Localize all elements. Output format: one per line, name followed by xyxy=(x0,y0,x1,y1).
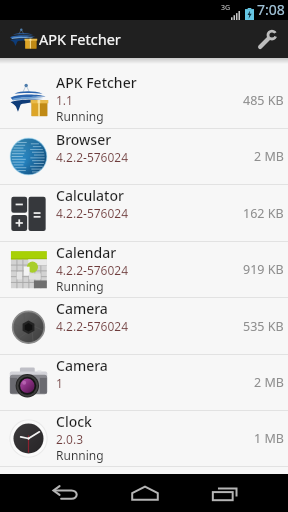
staticText: 4.2.2-576024 xyxy=(56,262,129,278)
staticText: APK Fetcher xyxy=(56,73,137,92)
button[interactable]: Browser xyxy=(0,129,288,185)
staticText: APK Fetcher xyxy=(39,29,121,49)
staticText: Clock xyxy=(56,412,92,431)
staticText: Camera xyxy=(56,299,108,318)
button[interactable]: Settings xyxy=(248,20,288,58)
staticText: 3G xyxy=(221,3,231,13)
button[interactable]: Back xyxy=(35,474,95,512)
staticText: 4.2.2-576024 xyxy=(56,205,129,221)
staticText: 1.1 xyxy=(56,92,73,108)
staticText: Running xyxy=(56,447,104,463)
staticText: 162 KB xyxy=(243,205,284,222)
staticText: 535 KB xyxy=(243,318,284,335)
staticText: Running xyxy=(56,108,104,124)
button[interactable]: Clock xyxy=(0,411,288,467)
staticText: 1 xyxy=(56,375,63,391)
button[interactable]: Recent apps xyxy=(195,474,255,512)
staticText: 4.2.2-576024 xyxy=(56,318,129,334)
staticText: Calendar xyxy=(56,243,117,262)
button[interactable]: Calendar xyxy=(0,242,288,298)
staticText: 2.0.3 xyxy=(56,431,84,447)
staticText: 7:08 xyxy=(257,0,285,19)
staticText: Running xyxy=(56,278,104,294)
staticText: 485 KB xyxy=(243,92,284,109)
staticText: 2 MB xyxy=(254,374,284,391)
staticText: 4.2.2-576024 xyxy=(56,149,129,165)
staticText: Camera xyxy=(56,356,108,375)
button[interactable]: Camera xyxy=(0,355,288,411)
button[interactable]: Camera xyxy=(0,298,288,355)
staticText: 919 KB xyxy=(243,261,284,278)
staticText: 1 MB xyxy=(254,430,284,447)
button[interactable]: Home xyxy=(115,474,175,512)
button[interactable]: Calculator xyxy=(0,185,288,242)
staticText: 2 MB xyxy=(254,148,284,165)
button[interactable]: APK Fetcher xyxy=(0,72,288,129)
staticText: Calculator xyxy=(56,186,124,205)
staticText: Browser xyxy=(56,130,112,149)
